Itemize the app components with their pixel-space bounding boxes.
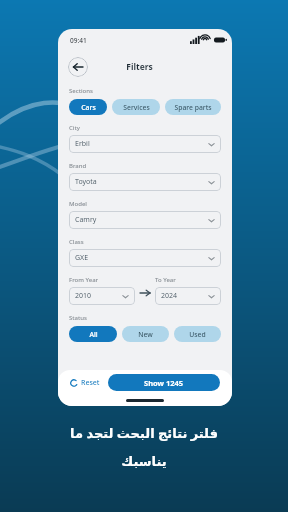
staticText: فلتر نتائج البحث لتجد ما	[70, 424, 218, 442]
staticText: Show 1245	[144, 378, 184, 388]
staticText: Model	[69, 200, 87, 208]
staticText: 09:41	[70, 36, 87, 45]
staticText: Filters	[126, 61, 153, 73]
staticText: All	[89, 330, 98, 339]
button[interactable]: 2010	[69, 287, 135, 305]
staticText: Camry	[75, 215, 97, 225]
button[interactable]: 2024	[155, 287, 221, 305]
staticText: 2024	[161, 291, 178, 301]
staticText: Sections	[69, 87, 93, 95]
staticText: Toyota	[75, 177, 97, 187]
button[interactable]: Camry	[69, 211, 221, 229]
button[interactable]: Cars	[69, 99, 107, 115]
staticText: Cars	[81, 103, 96, 112]
staticText: Reset	[81, 378, 100, 388]
button[interactable]: Used	[174, 326, 221, 342]
staticText: Class	[69, 238, 84, 246]
staticText: 2010	[75, 291, 92, 301]
staticText: Used	[189, 330, 206, 339]
staticText: Services	[123, 103, 150, 112]
staticText: يناسبك	[121, 454, 167, 469]
staticText: To Year	[155, 276, 176, 284]
button[interactable]: Reset	[70, 374, 100, 392]
staticText: Status	[69, 314, 88, 322]
button[interactable]: Services	[112, 99, 160, 115]
button[interactable]: GXE	[69, 249, 221, 267]
staticText: GXE	[75, 253, 89, 263]
button[interactable]: Erbil	[69, 135, 221, 153]
button[interactable]: New	[122, 326, 169, 342]
button[interactable]: Back	[68, 57, 88, 77]
button[interactable]: All	[69, 326, 117, 342]
staticText: From Year	[69, 276, 99, 284]
staticText: Spare parts	[174, 103, 212, 112]
staticText: Brand	[69, 162, 87, 170]
button[interactable]: Spare parts	[165, 99, 221, 115]
staticText: New	[138, 330, 153, 339]
staticText: Erbil	[75, 139, 90, 149]
staticText: City	[69, 124, 80, 132]
button[interactable]: Show 1245	[108, 374, 220, 391]
button[interactable]: Toyota	[69, 173, 221, 191]
